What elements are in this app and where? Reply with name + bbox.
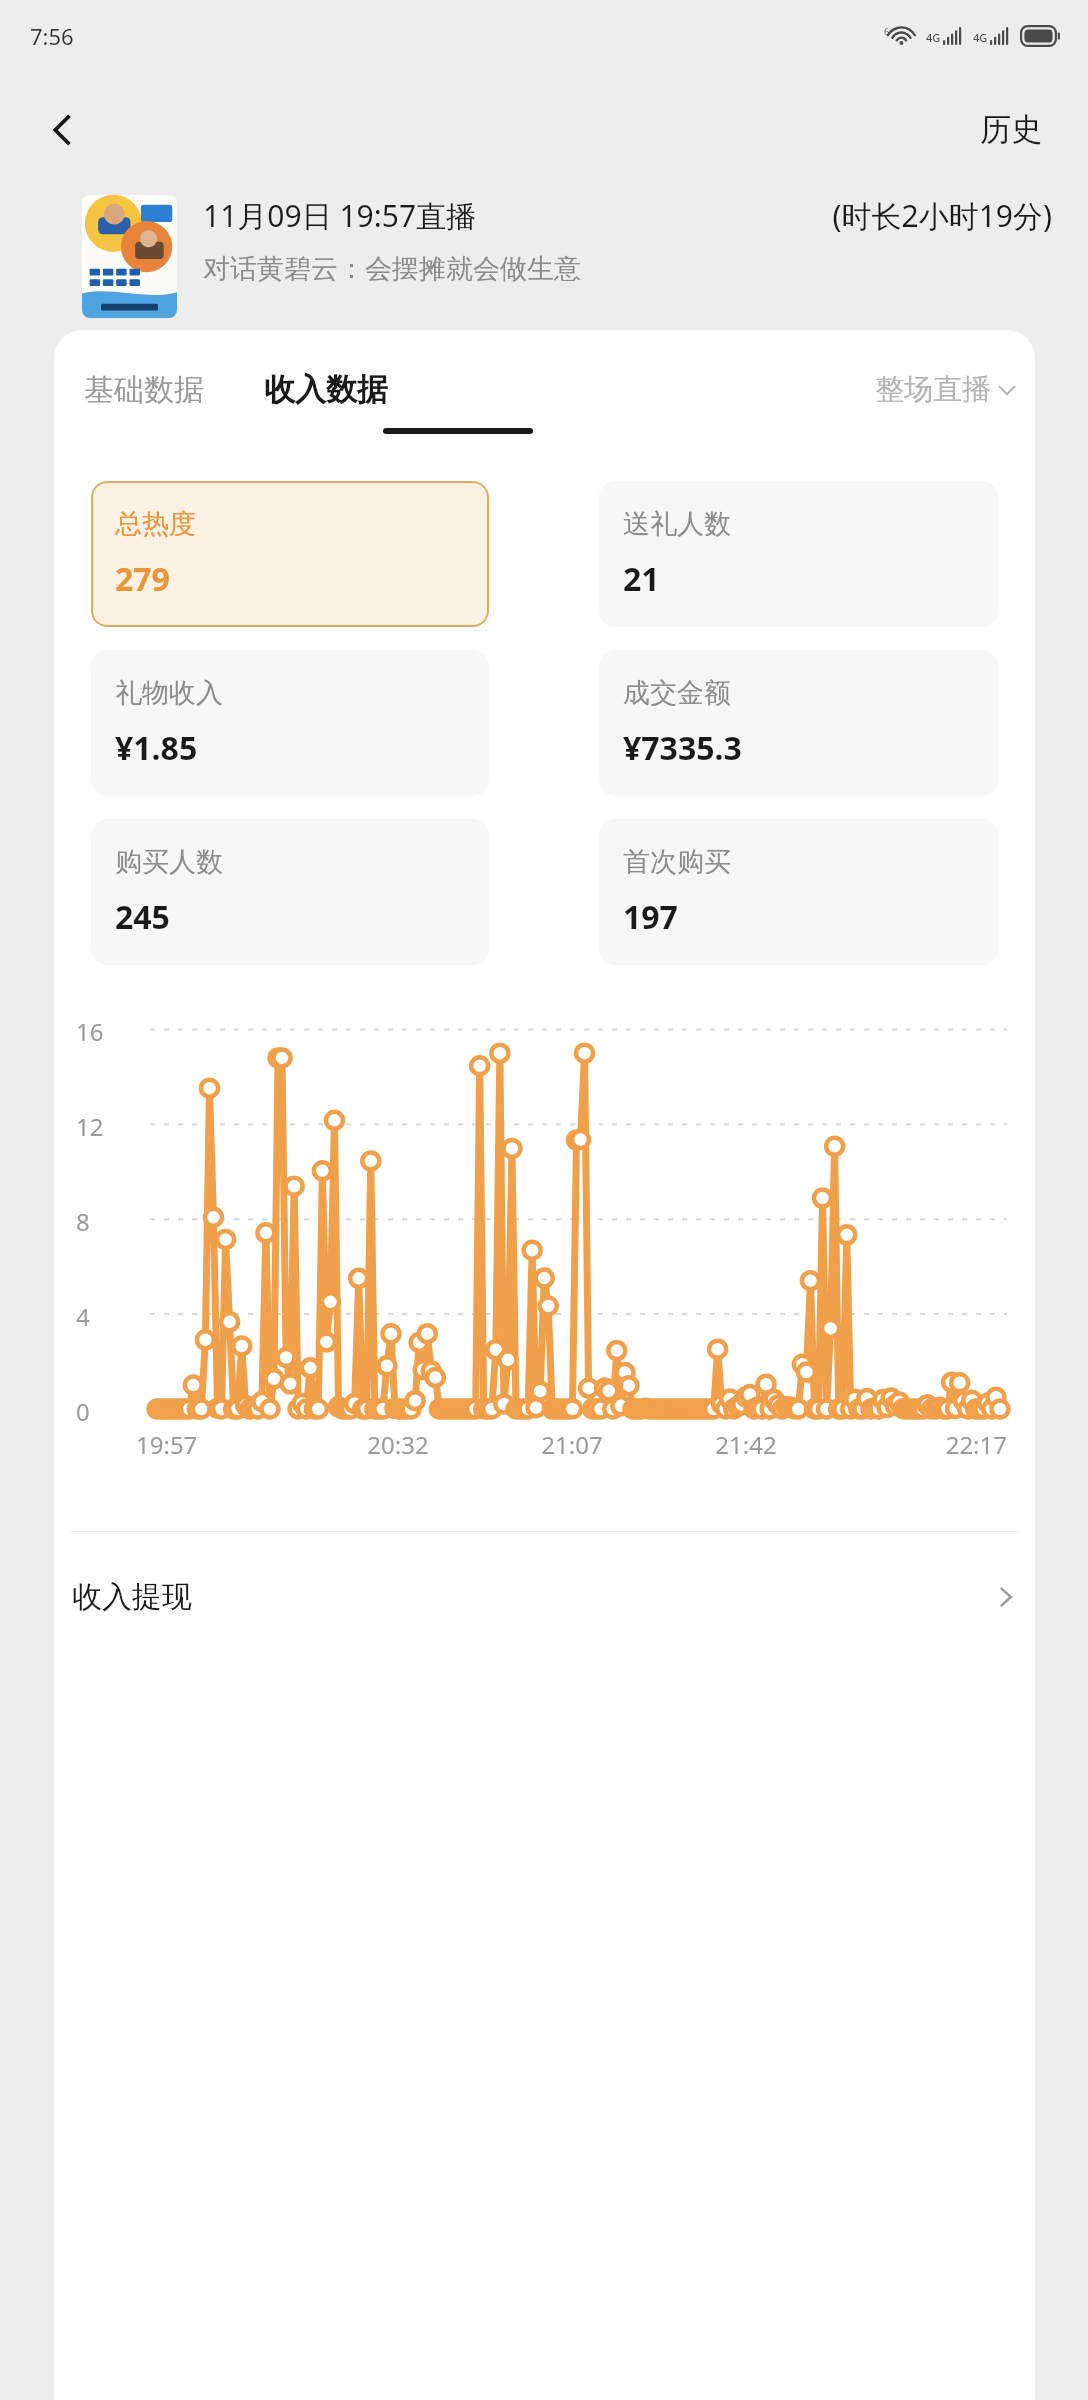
staticText: 0 bbox=[76, 1395, 90, 1428]
button[interactable]: 整场直播 bbox=[857, 355, 1035, 424]
staticText: ¥1.85 bbox=[115, 726, 198, 770]
button[interactable]: Live thumbnail bbox=[82, 195, 177, 318]
staticText: 279 bbox=[115, 557, 170, 601]
staticText: (时长2小时19分) bbox=[627, 195, 1052, 236]
staticText: 总热度 bbox=[115, 507, 196, 541]
staticText: 基础数据 bbox=[84, 371, 204, 409]
staticText: 12 bbox=[76, 1110, 104, 1143]
staticText: 197 bbox=[623, 895, 678, 939]
staticText: 16 bbox=[76, 1015, 104, 1048]
staticText: 送礼人数 bbox=[623, 507, 731, 541]
staticText: 整场直播 bbox=[875, 371, 991, 408]
button[interactable]: 购买人数 bbox=[91, 819, 489, 965]
staticText: ¥7335.3 bbox=[623, 726, 742, 770]
button[interactable]: 送礼人数 bbox=[599, 481, 998, 627]
staticText: 6 bbox=[884, 25, 890, 37]
staticText: 对话黄碧云：会摆摊就会做生意 bbox=[203, 252, 581, 286]
button[interactable]: 成交金额 bbox=[599, 650, 998, 796]
staticText: 21:07 bbox=[485, 1428, 659, 1461]
staticText: 成交金额 bbox=[623, 676, 731, 710]
button[interactable]: 礼物收入 bbox=[91, 650, 489, 796]
button[interactable]: 首次购买 bbox=[599, 819, 998, 965]
staticText: 4G bbox=[973, 30, 988, 45]
staticText: 4 bbox=[76, 1300, 90, 1333]
staticText: 22:17 bbox=[833, 1428, 1007, 1461]
staticText: 7:56 bbox=[30, 21, 74, 51]
button[interactable]: 收入数据 bbox=[246, 354, 406, 425]
staticText: 4G bbox=[926, 30, 941, 45]
staticText: 11月09日 19:57直播 bbox=[203, 195, 617, 236]
staticText: 礼物收入 bbox=[115, 676, 223, 710]
staticText: 收入数据 bbox=[264, 370, 388, 409]
button[interactable]: 基础数据 bbox=[66, 355, 222, 425]
staticText: 收入提现 bbox=[72, 1578, 995, 1616]
button[interactable]: Back bbox=[26, 94, 98, 166]
staticText: 21 bbox=[623, 557, 660, 601]
staticText: 245 bbox=[115, 895, 170, 939]
staticText: 购买人数 bbox=[115, 845, 223, 879]
staticText: 历史 bbox=[980, 110, 1042, 149]
staticText: 20:32 bbox=[311, 1428, 485, 1461]
button[interactable]: 收入提现 bbox=[54, 1572, 1035, 1622]
button[interactable]: 总热度 bbox=[91, 481, 489, 627]
staticText: 19:57 bbox=[136, 1428, 311, 1461]
staticText: 首次购买 bbox=[623, 845, 731, 879]
staticText: 8 bbox=[76, 1205, 90, 1238]
staticText: 21:42 bbox=[659, 1428, 833, 1461]
